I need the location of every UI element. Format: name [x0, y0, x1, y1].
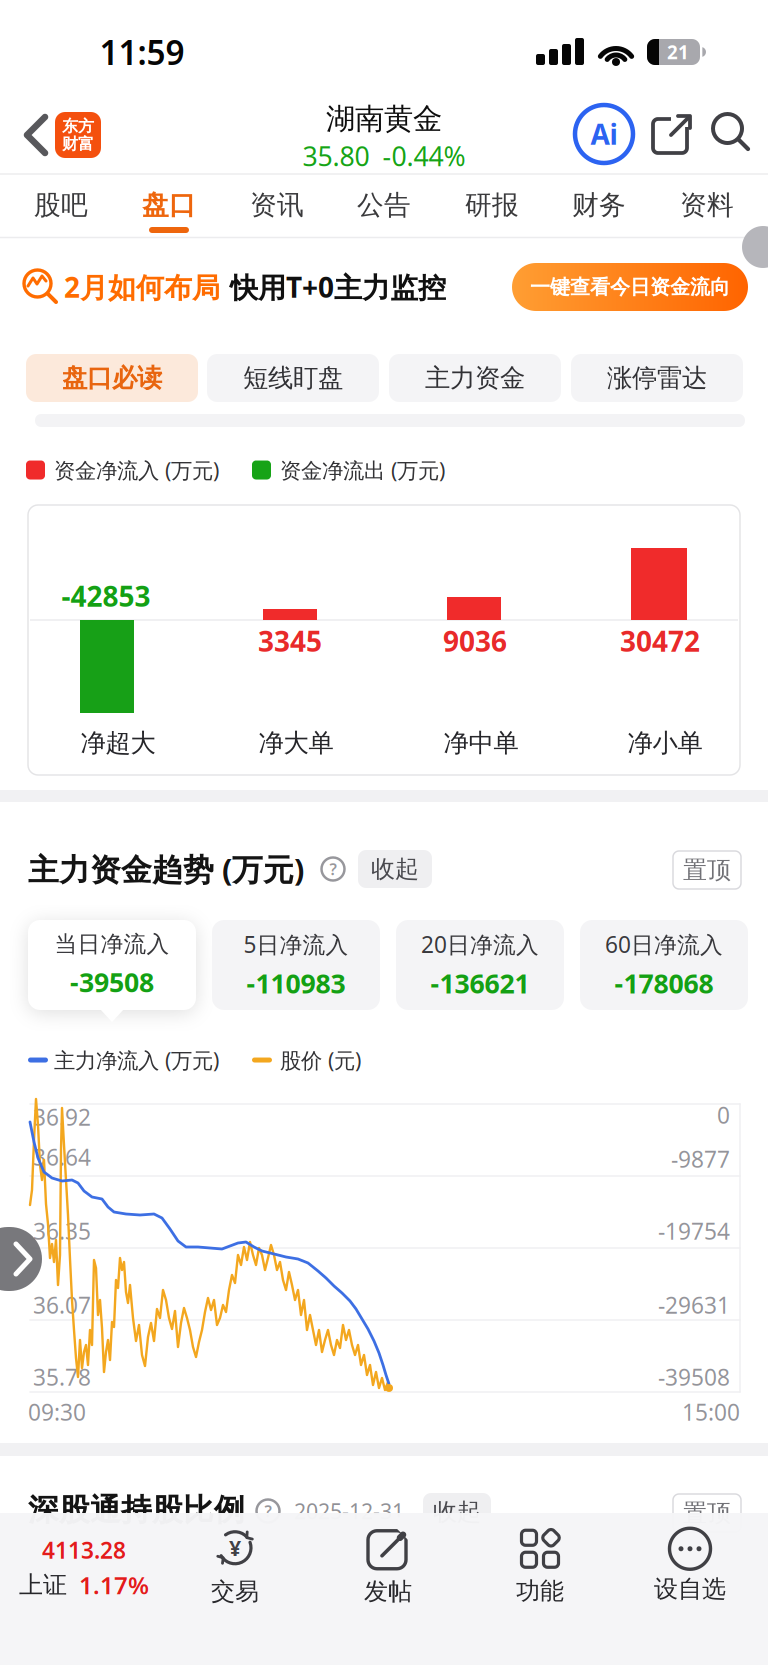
- button[interactable]: 短线盯盘: [207, 354, 379, 402]
- button[interactable]: 功能: [475, 1520, 605, 1612]
- staticText: 30472: [620, 622, 700, 660]
- button[interactable]: 当日净流入: [28, 920, 196, 1010]
- button[interactable]: 资料: [657, 179, 757, 231]
- button[interactable]: 返回: [15, 113, 59, 157]
- staticText: 35.80: [302, 138, 369, 174]
- staticText: -29631: [658, 1290, 730, 1320]
- button[interactable]: 公告: [334, 179, 434, 231]
- staticText: 短线盯盘: [243, 362, 343, 393]
- button[interactable]: AI助手: [575, 105, 633, 163]
- button[interactable]: 置顶: [673, 851, 741, 889]
- staticText: 净超大: [80, 727, 155, 758]
- button[interactable]: 主力资金: [389, 354, 561, 402]
- staticText: 36.07: [33, 1290, 91, 1320]
- staticText: -136621: [430, 965, 529, 1001]
- button[interactable]: 搜索: [709, 110, 753, 154]
- staticText: 36.92: [33, 1102, 91, 1132]
- staticText: 15:00: [682, 1397, 740, 1427]
- staticText: 11:59: [99, 30, 184, 74]
- staticText: 功能: [516, 1576, 564, 1606]
- staticText: -39508: [658, 1362, 730, 1392]
- staticText: 60日净流入: [605, 929, 723, 959]
- staticText: 财富: [62, 134, 94, 154]
- staticText: 盘口: [142, 189, 196, 221]
- staticText: 股价 (元): [280, 1046, 361, 1074]
- button[interactable]: 东方财富: [55, 112, 101, 158]
- staticText: -39508: [70, 964, 154, 1000]
- staticText: 上证: [19, 1570, 67, 1600]
- staticText: 股吧: [34, 189, 88, 221]
- staticText: 净中单: [443, 727, 518, 758]
- staticText: 交易: [211, 1577, 259, 1606]
- staticText: -178068: [614, 965, 713, 1001]
- staticText: 置顶: [683, 1498, 731, 1528]
- staticText: 净小单: [627, 727, 702, 758]
- button[interactable]: 60日净流入: [580, 920, 748, 1010]
- button[interactable]: 置顶: [673, 1494, 741, 1532]
- staticText: 主力资金: [425, 362, 525, 393]
- staticText: 0: [717, 1100, 730, 1130]
- button[interactable]: 一键查看今日资金流向: [512, 263, 748, 311]
- staticText: 3345: [258, 622, 322, 660]
- staticText: 主力资金趋势 (万元): [28, 849, 304, 889]
- staticText: 1.17%: [79, 1569, 149, 1601]
- button[interactable]: 20日净流入: [396, 920, 564, 1010]
- staticText: 一键查看今日资金流向: [530, 275, 730, 299]
- staticText: ?: [264, 1500, 271, 1522]
- staticText: -19754: [658, 1216, 730, 1246]
- button[interactable]: 资金监控: [20, 266, 60, 306]
- button[interactable]: 资讯: [227, 179, 327, 231]
- staticText: 2月如何布局: [64, 268, 220, 306]
- staticText: 设自选: [654, 1574, 726, 1604]
- button[interactable]: 盘口: [119, 179, 219, 231]
- staticText: 当日净流入: [54, 930, 169, 958]
- button[interactable]: 收起: [358, 850, 432, 888]
- staticText: 9036: [443, 622, 507, 660]
- staticText: 置顶: [683, 855, 731, 885]
- button[interactable]: 收起: [423, 1493, 491, 1531]
- staticText: 发帖: [364, 1577, 412, 1606]
- staticText: ?: [329, 858, 336, 880]
- staticText: 35.78: [33, 1362, 91, 1392]
- staticText: 涨停雷达: [607, 362, 707, 393]
- button[interactable]: ¥: [170, 1520, 300, 1612]
- staticText: -42853: [61, 577, 150, 615]
- staticText: 盘口必读: [62, 362, 162, 393]
- staticText: 2025-12-31: [294, 1497, 404, 1525]
- staticText: 5日净流入: [243, 929, 348, 959]
- staticText: -9877: [671, 1144, 730, 1174]
- staticText: 收起: [433, 1497, 481, 1527]
- button[interactable]: 关闭: [742, 226, 768, 268]
- staticText: 公告: [357, 189, 411, 221]
- staticText: 09:30: [28, 1397, 86, 1427]
- staticText: 财务: [572, 189, 626, 221]
- staticText: 湖南黄金: [326, 101, 442, 137]
- button[interactable]: 展开: [0, 1227, 64, 1291]
- staticText: -0.44%: [382, 138, 465, 174]
- button[interactable]: 发帖: [323, 1520, 453, 1612]
- staticText: 研报: [465, 189, 519, 221]
- staticText: 净大单: [258, 727, 333, 758]
- button[interactable]: 说明: [256, 1499, 279, 1522]
- staticText: 深股通持股比例: [28, 1491, 245, 1529]
- button[interactable]: 5日净流入: [212, 920, 380, 1010]
- button[interactable]: 股吧: [11, 179, 111, 231]
- button[interactable]: 财务: [549, 179, 649, 231]
- button[interactable]: 设自选: [620, 1520, 760, 1612]
- staticText: 收起: [371, 854, 419, 884]
- staticText: 资金净流入 (万元): [54, 456, 219, 484]
- staticText: 资金净流出 (万元): [280, 456, 445, 484]
- button[interactable]: 说明: [321, 857, 344, 880]
- staticText: 主力净流入 (万元): [54, 1046, 219, 1074]
- staticText: 21: [667, 40, 689, 64]
- staticText: ¥: [229, 1534, 241, 1562]
- staticText: 36.35: [33, 1216, 91, 1246]
- button[interactable]: 涨停雷达: [571, 354, 743, 402]
- button[interactable]: 盘口必读: [26, 354, 198, 402]
- staticText: -110983: [246, 965, 345, 1001]
- staticText: 资讯: [250, 189, 304, 221]
- button[interactable]: 分享: [649, 109, 697, 157]
- staticText: 36.64: [33, 1142, 91, 1172]
- button[interactable]: 4113.28: [1, 1525, 166, 1611]
- button[interactable]: 研报: [442, 179, 542, 231]
